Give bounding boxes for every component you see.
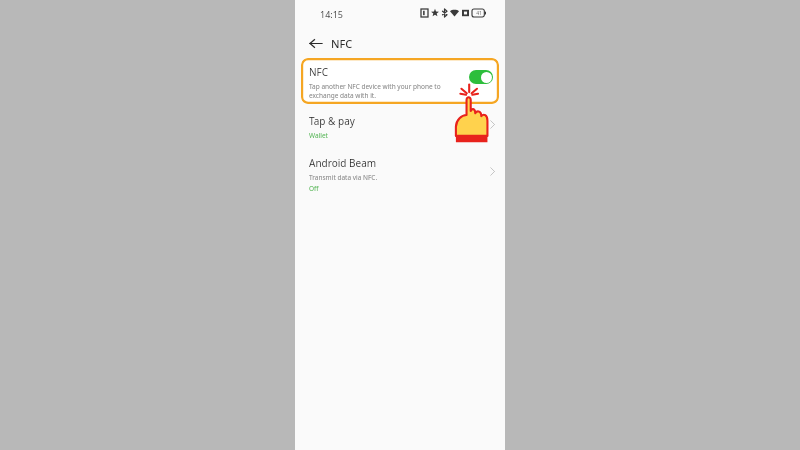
staticText: Tap & pay [309, 114, 355, 128]
staticText: Transmit data via NFC. [309, 173, 378, 182]
staticText: 14:15 [320, 8, 344, 20]
staticText: 41 [476, 10, 482, 17]
button[interactable]: Android Beam [295, 148, 505, 196]
button[interactable]: Tap & pay [295, 104, 505, 148]
staticText: Android Beam [309, 156, 377, 170]
button[interactable]: NFC toggle, on [469, 70, 493, 84]
staticText: exchange data with it. [309, 91, 376, 100]
staticText: Wallet [309, 131, 328, 140]
button[interactable]: Back [303, 31, 327, 55]
staticText: NFC [309, 65, 329, 79]
staticText: Tap another NFC device with your phone t… [309, 82, 441, 91]
staticText: NFC [331, 36, 353, 51]
staticText: Off [309, 184, 319, 193]
button[interactable]: NFC [301, 58, 499, 104]
